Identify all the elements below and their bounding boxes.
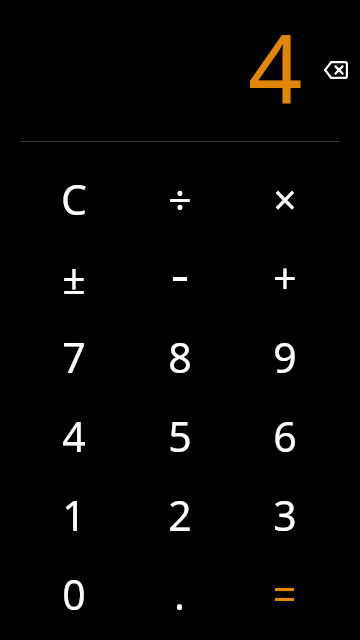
button[interactable]: Minus bbox=[127, 238, 232, 317]
button[interactable]: Clear bbox=[21, 159, 127, 238]
staticText: 4 bbox=[62, 408, 86, 464]
staticText: 4 bbox=[248, 1, 303, 130]
staticText: ± bbox=[62, 250, 86, 306]
button[interactable]: 9 bbox=[232, 317, 337, 396]
staticText: 0 bbox=[62, 566, 86, 622]
button[interactable]: 6 bbox=[232, 396, 337, 475]
button[interactable]: Plus bbox=[232, 238, 337, 317]
button[interactable]: 2 bbox=[127, 475, 232, 554]
staticText: 7 bbox=[62, 329, 86, 385]
button[interactable]: Multiply bbox=[232, 159, 337, 238]
staticText: 1 bbox=[62, 487, 86, 543]
button[interactable]: 0 bbox=[21, 554, 127, 633]
staticText: C bbox=[61, 171, 87, 227]
button[interactable]: Divide bbox=[127, 159, 232, 238]
staticText: 6 bbox=[273, 408, 297, 464]
button[interactable]: 8 bbox=[127, 317, 232, 396]
button[interactable]: Plus minus bbox=[21, 238, 127, 317]
staticText: 8 bbox=[168, 329, 192, 385]
staticText: 9 bbox=[273, 329, 297, 385]
staticText: × bbox=[273, 171, 297, 227]
button[interactable]: 7 bbox=[21, 317, 127, 396]
staticText: + bbox=[273, 250, 297, 306]
staticText: 5 bbox=[168, 408, 192, 464]
staticText: 3 bbox=[273, 487, 297, 543]
button[interactable]: 4 bbox=[21, 396, 127, 475]
button[interactable]: Decimal point bbox=[127, 554, 232, 633]
staticText: 2 bbox=[168, 487, 192, 543]
button[interactable]: Backspace bbox=[312, 46, 360, 94]
button[interactable]: 5 bbox=[127, 396, 232, 475]
staticText: ÷ bbox=[168, 171, 192, 227]
button[interactable]: 1 bbox=[21, 475, 127, 554]
button[interactable]: Equals bbox=[232, 554, 337, 633]
staticText: . bbox=[174, 566, 185, 622]
button[interactable]: 3 bbox=[232, 475, 337, 554]
